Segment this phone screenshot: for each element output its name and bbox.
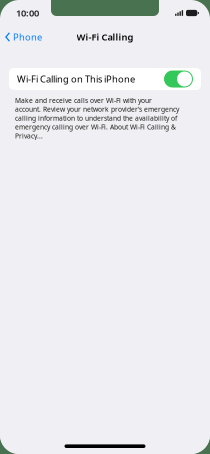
button[interactable]: Phone	[0, 27, 42, 47]
staticText: Phone	[13, 31, 42, 43]
button[interactable]: Make and receive calls over Wi-Fi with y…	[0, 90, 179, 140]
staticText: Make and receive calls over Wi-Fi with y…	[15, 96, 179, 140]
staticText: 10:00	[16, 7, 39, 19]
staticText: Wi-Fi Calling	[76, 31, 133, 43]
staticText: Wi-Fi Calling on This iPhone	[17, 73, 135, 85]
button[interactable]: Wi-Fi Calling on This iPhone	[9, 68, 201, 90]
